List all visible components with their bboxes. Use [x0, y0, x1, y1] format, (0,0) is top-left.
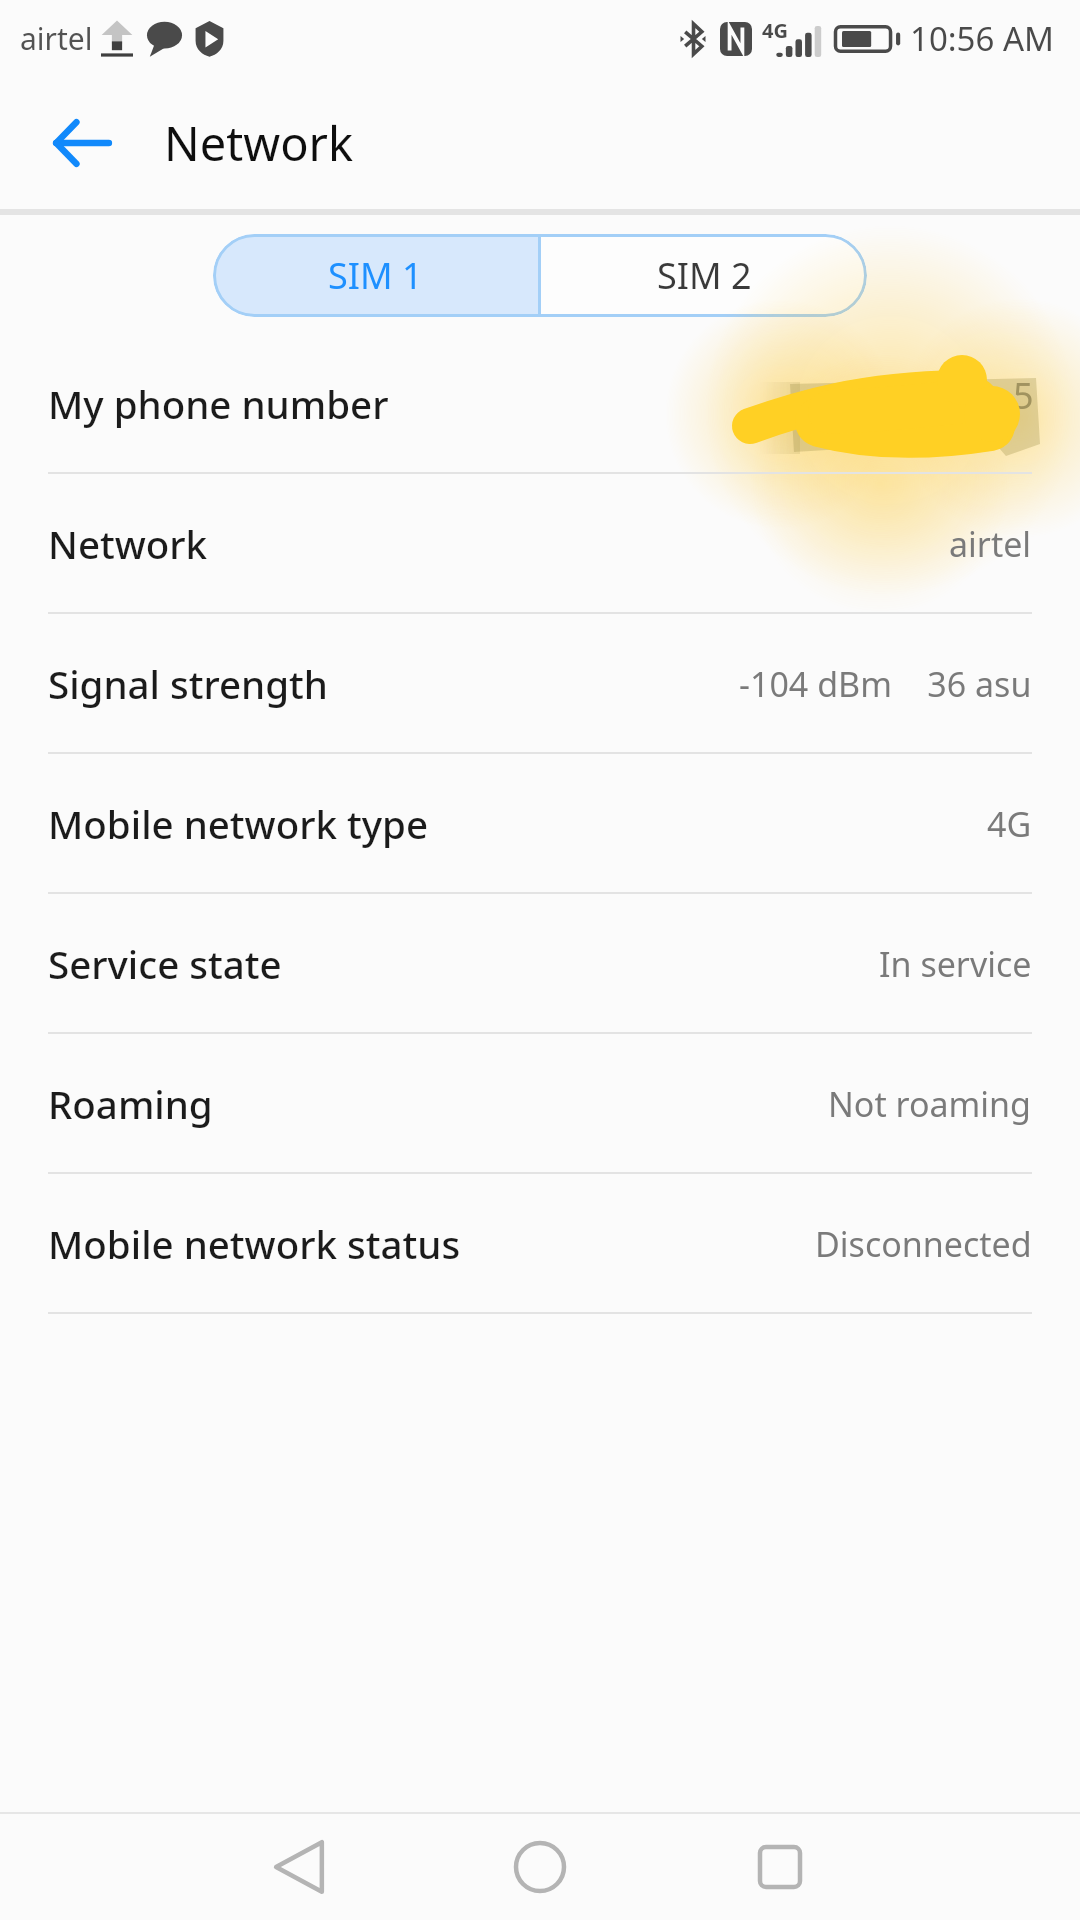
staticText: SIM 1 — [328, 251, 423, 300]
button[interactable]: Home — [420, 1814, 660, 1920]
button[interactable]: SIM 2 — [541, 234, 867, 317]
staticText: Roaming — [48, 1078, 213, 1130]
button[interactable]: SIM 1 — [213, 234, 538, 317]
staticText: Mobile network status — [48, 1218, 461, 1270]
staticText: My phone number — [48, 378, 389, 430]
button[interactable]: Roaming — [0, 1034, 1080, 1174]
staticText: Signal strength — [48, 658, 328, 710]
staticText: Service state — [48, 938, 282, 990]
button[interactable]: Back — [40, 101, 124, 185]
staticText: 4G — [987, 801, 1032, 847]
staticText: Network — [48, 518, 208, 570]
button[interactable]: 5 — [0, 334, 1080, 474]
staticText: 10:56 AM — [910, 16, 1054, 61]
button[interactable]: Recents — [660, 1814, 900, 1920]
staticText: 4G — [762, 17, 788, 44]
staticText: Network — [164, 111, 354, 175]
staticText: SIM 2 — [657, 251, 752, 300]
staticText: Disconnected — [815, 1221, 1032, 1267]
staticText: In service — [879, 941, 1032, 987]
staticText: -104 dBm 36 asu — [739, 661, 1032, 707]
button[interactable]: Back — [180, 1814, 420, 1920]
button[interactable]: Mobile network type — [0, 754, 1080, 894]
staticText: airtel — [949, 521, 1032, 567]
button[interactable]: Service state — [0, 894, 1080, 1034]
staticText: Not roaming — [828, 1081, 1032, 1127]
button[interactable]: Signal strength — [0, 614, 1080, 754]
staticText: 5 — [1013, 371, 1034, 420]
button[interactable]: Network — [0, 474, 1080, 614]
staticText: Mobile network type — [48, 798, 429, 850]
button[interactable]: Mobile network status — [0, 1174, 1080, 1314]
staticText: airtel — [20, 18, 93, 59]
